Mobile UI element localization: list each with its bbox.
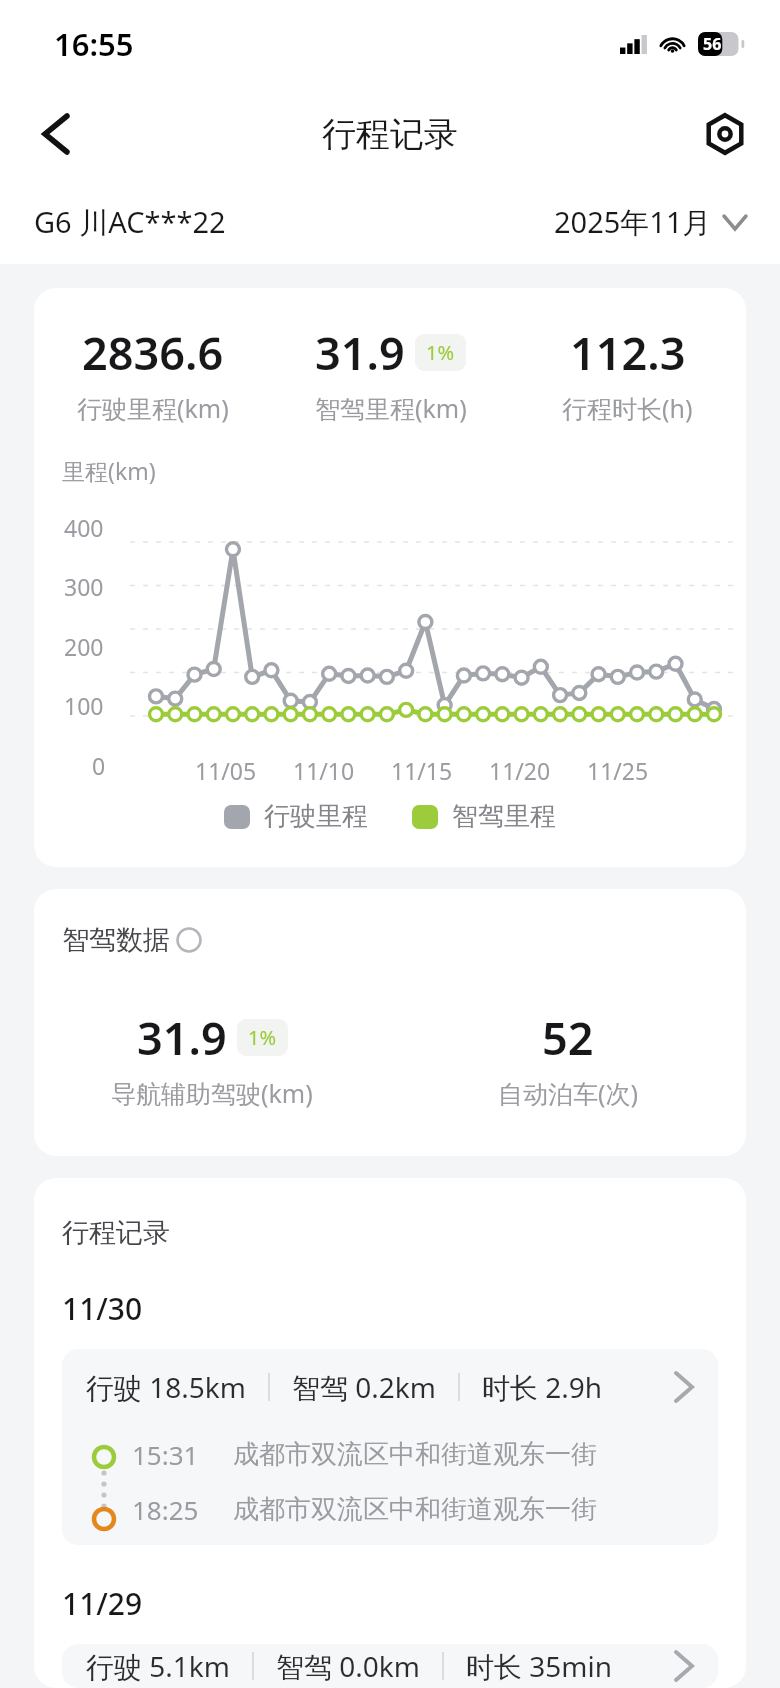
staticText: 成都市双流区中和街道观东一街 [233,1493,597,1526]
staticText: 行驶里程 [264,800,368,833]
staticText: 行程记录 [322,113,458,156]
staticText: 时长 35min [466,1647,613,1685]
staticText: 112.3 [570,322,686,383]
staticText: 成都市双流区中和街道观东一街 [233,1438,597,1471]
staticText: 11/15 [391,755,453,786]
staticText: 行驶里程(km) [77,391,229,425]
staticText: 里程(km) [62,455,156,486]
button[interactable]: 2025年11月 [554,202,746,242]
staticText: 0 [92,750,106,781]
staticText: 行驶 5.1km [86,1647,230,1685]
staticText: 15:31 [132,1437,199,1472]
staticText: 智驾里程(km) [315,391,467,425]
staticText: 行驶 18.5km [86,1368,246,1406]
staticText: 1% [248,1024,277,1051]
staticText: 31.9 [137,1007,227,1068]
staticText: 11/10 [293,755,355,786]
button[interactable]: 行驶 18.5km [62,1349,718,1545]
staticText: 52 [542,1007,594,1068]
staticText: 11/20 [489,755,551,786]
staticText: 智驾数据 [62,923,170,957]
staticText: 智驾 0.0km [276,1647,420,1685]
staticText: 导航辅助驾驶(km) [111,1076,313,1110]
staticText: 56 [703,33,722,55]
staticText: 时长 2.9h [482,1368,603,1406]
button[interactable]: Settings [694,103,756,165]
staticText: 11/30 [62,1288,143,1329]
staticText: 2836.6 [82,322,224,383]
staticText: 智驾里程 [452,800,556,833]
staticText: 11/29 [62,1583,143,1624]
staticText: 400 [64,512,104,543]
button[interactable]: 智驾数据 [62,923,202,957]
staticText: 智驾 0.2km [292,1368,436,1406]
staticText: 31.9 [315,322,405,383]
button[interactable]: 行驶里程 [224,800,368,833]
staticText: 11/25 [587,755,649,786]
button[interactable]: Back [26,104,86,164]
staticText: 18:25 [132,1492,199,1527]
button[interactable]: 行驶 5.1km [62,1644,718,1688]
staticText: 行程记录 [62,1216,170,1250]
staticText: 100 [64,690,104,721]
button[interactable]: 智驾里程 [412,800,556,833]
staticText: 1% [426,339,455,366]
staticText: 2025年11月 [554,202,712,242]
staticText: 200 [64,631,104,662]
staticText: 300 [64,571,104,602]
staticText: 行程时长(h) [562,391,693,425]
staticText: 11/05 [195,755,257,786]
staticText: 16:55 [54,23,134,65]
staticText: G6 川AC***22 [34,202,226,242]
staticText: 自动泊车(次) [498,1076,639,1110]
